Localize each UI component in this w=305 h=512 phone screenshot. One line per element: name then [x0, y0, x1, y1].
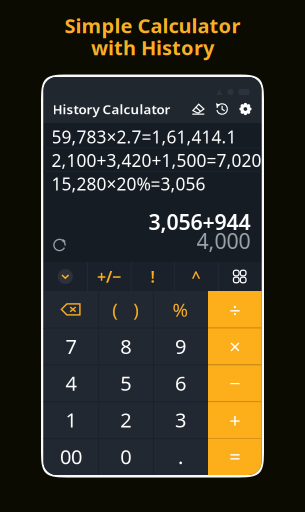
- button[interactable]: 15,280×20%=3,056: [43, 172, 261, 195]
- staticText: ÷: [229, 296, 240, 323]
- staticText: ( ): [112, 297, 139, 322]
- staticText: +/−: [97, 266, 121, 287]
- staticText: 0: [120, 443, 131, 470]
- staticText: ^: [192, 266, 201, 287]
- button[interactable]: 0: [98, 438, 153, 475]
- button[interactable]: !: [131, 262, 174, 291]
- staticText: !: [150, 266, 154, 287]
- button[interactable]: ÷: [208, 291, 261, 328]
- button[interactable]: 6: [153, 365, 208, 401]
- staticText: ×: [229, 333, 240, 359]
- button[interactable]: ×: [208, 328, 261, 365]
- staticText: 59,783×2.7=1,61,414.1: [51, 125, 236, 148]
- staticText: with History: [91, 34, 214, 61]
- button[interactable]: =: [208, 438, 261, 475]
- staticText: 4,000: [196, 227, 250, 255]
- button[interactable]: Clear history: [192, 103, 205, 115]
- staticText: 6: [175, 370, 186, 396]
- button[interactable]: .: [153, 438, 208, 475]
- staticText: 4: [65, 370, 76, 396]
- staticText: 1: [65, 406, 76, 433]
- button[interactable]: 2: [98, 401, 153, 438]
- button[interactable]: 7: [43, 328, 98, 365]
- staticText: .: [178, 443, 183, 470]
- staticText: 5: [120, 370, 131, 396]
- staticText: 9: [175, 333, 186, 359]
- button[interactable]: 59,783×2.7=1,61,414.1: [43, 125, 261, 148]
- button[interactable]: 8: [98, 328, 153, 365]
- staticText: 2: [120, 406, 131, 433]
- button[interactable]: 4: [43, 365, 98, 401]
- staticText: 3,056+944: [148, 208, 250, 236]
- button[interactable]: %: [153, 291, 208, 328]
- button[interactable]: ^: [174, 262, 218, 291]
- button[interactable]: ( ): [98, 291, 153, 328]
- button[interactable]: 5: [98, 365, 153, 401]
- button[interactable]: Collapse: [43, 262, 87, 291]
- staticText: =: [229, 443, 240, 470]
- staticText: History Calculator: [52, 100, 170, 118]
- button[interactable]: 1: [43, 401, 98, 438]
- staticText: %: [173, 297, 189, 322]
- button[interactable]: −: [208, 365, 261, 401]
- staticText: −: [229, 370, 240, 396]
- button[interactable]: More functions: [218, 262, 261, 291]
- button[interactable]: Backspace: [43, 291, 98, 328]
- staticText: Simple Calculator: [64, 12, 240, 39]
- button[interactable]: 9: [153, 328, 208, 365]
- staticText: 00: [60, 443, 82, 470]
- button[interactable]: Refresh: [52, 238, 66, 255]
- staticText: 15,280×20%=3,056: [51, 172, 205, 195]
- button[interactable]: +/−: [87, 262, 131, 291]
- button[interactable]: 00: [43, 438, 98, 475]
- button[interactable]: 3: [153, 401, 208, 438]
- staticText: +: [229, 406, 240, 433]
- button[interactable]: 2,100+3,420+1,500=7,020: [43, 148, 261, 172]
- staticText: 7: [65, 333, 76, 359]
- button[interactable]: History: [216, 103, 228, 115]
- button[interactable]: +: [208, 401, 261, 438]
- staticText: 3: [175, 406, 186, 433]
- button[interactable]: Settings: [239, 103, 251, 115]
- staticText: 2,100+3,420+1,500=7,020: [51, 149, 261, 172]
- staticText: 8: [120, 333, 131, 359]
